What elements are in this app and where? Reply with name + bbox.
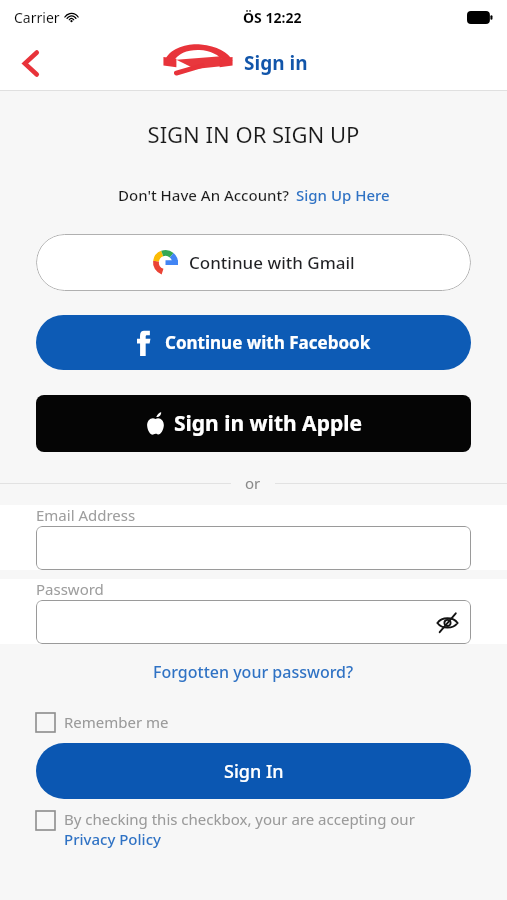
staticText: By checking this checkbox, your are acce… (64, 809, 415, 829)
staticText: Sign in with Apple (174, 409, 362, 438)
staticText: Continue with Facebook (165, 331, 371, 354)
staticText: Password (36, 579, 104, 599)
button[interactable]: Back (8, 41, 52, 85)
button[interactable]: Sign In (36, 743, 471, 799)
staticText: Remember me (64, 712, 169, 732)
staticText: SIGN IN OR SIGN UP (0, 119, 507, 149)
button[interactable] (36, 526, 471, 570)
button[interactable]: Continue with Facebook (36, 315, 471, 370)
staticText: Privacy Policy (64, 829, 161, 849)
staticText: Sign In (224, 759, 284, 784)
staticText: ÖS 12:22 (243, 8, 302, 27)
staticText: Carrier (14, 8, 60, 27)
staticText: Sign Up Here (296, 185, 390, 205)
button[interactable]: Show password (36, 600, 471, 644)
button[interactable]: Sign in with Apple (36, 395, 471, 452)
button[interactable]: Forgotten your password? (153, 661, 354, 683)
staticText: Forgotten your password? (153, 661, 354, 683)
button[interactable]: Sign Up Here (296, 185, 390, 205)
staticText: Email Address (36, 505, 136, 525)
staticText: or (245, 473, 261, 493)
staticText: Don't Have An Account? (118, 185, 289, 205)
button[interactable]: Sign in (162, 42, 308, 84)
button[interactable]: Remember me (36, 712, 169, 732)
staticText: Sign in (244, 50, 308, 76)
button[interactable]: Show password (429, 604, 465, 640)
button[interactable]: By checking this checkbox, your are acce… (36, 809, 415, 849)
button[interactable]: Continue with Gmail (36, 234, 471, 291)
staticText: Continue with Gmail (189, 251, 355, 274)
